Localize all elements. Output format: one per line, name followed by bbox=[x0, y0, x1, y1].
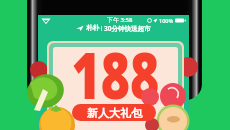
staticText: 30分钟快送超市 bbox=[104, 24, 151, 33]
staticText: 朴朴 bbox=[86, 24, 99, 32]
staticText: 下午 3:58 bbox=[107, 16, 133, 24]
staticText: 100% bbox=[159, 17, 174, 24]
staticText: 188 bbox=[71, 47, 159, 118]
staticText: 新人大礼包 bbox=[87, 106, 142, 120]
button[interactable]: 新人大礼包 bbox=[72, 104, 156, 121]
